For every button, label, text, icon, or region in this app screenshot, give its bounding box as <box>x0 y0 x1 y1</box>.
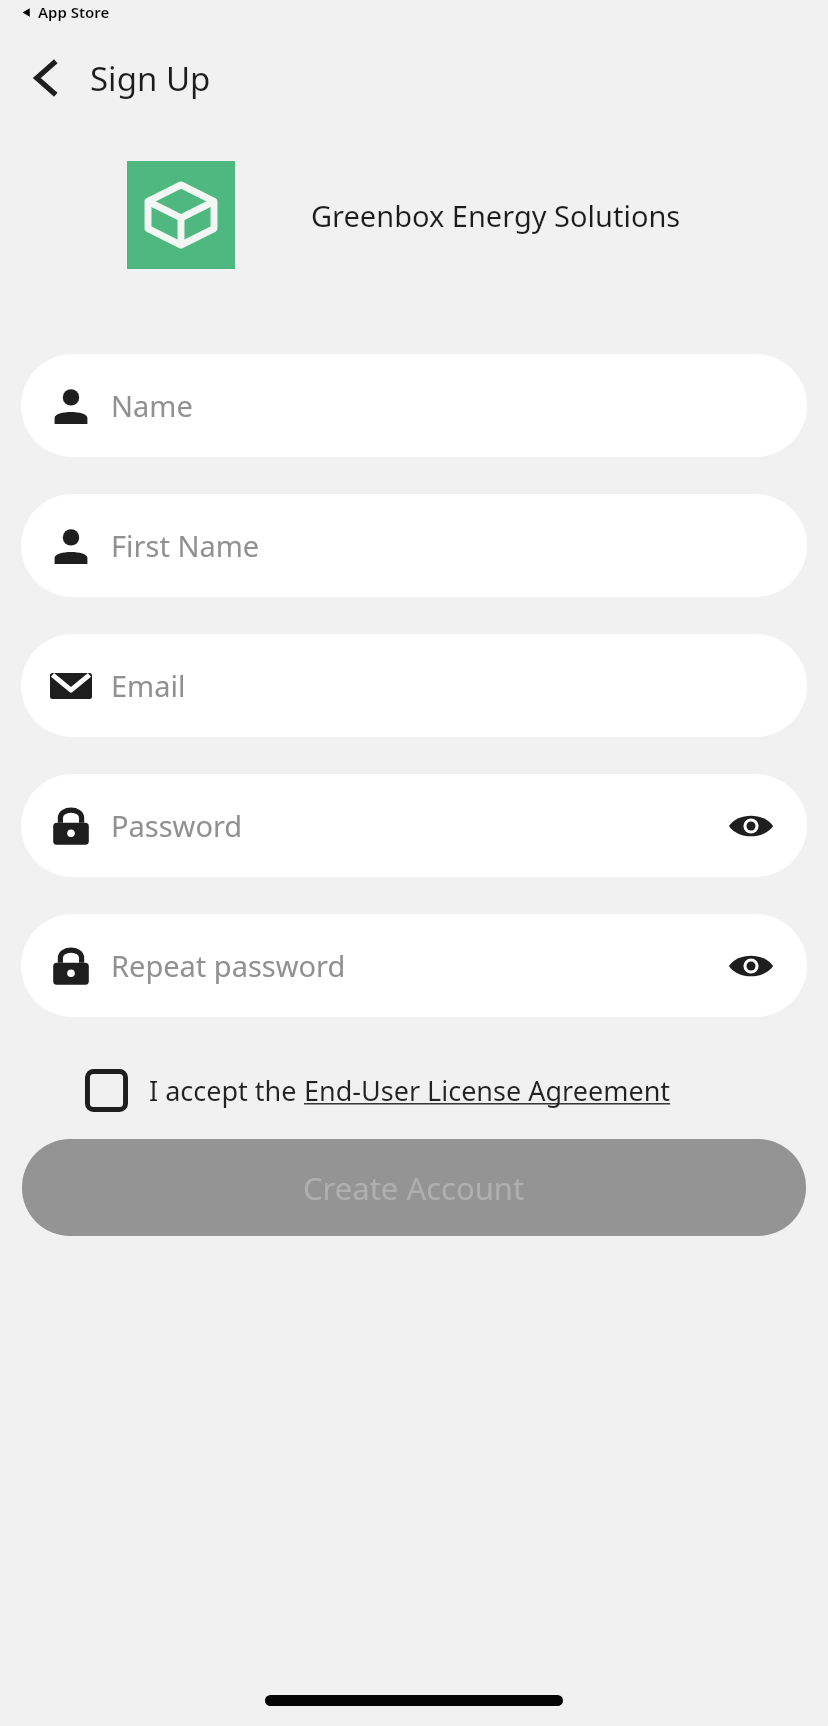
button[interactable]: First Name <box>21 494 807 597</box>
button[interactable]: Show password <box>715 930 787 1002</box>
staticText: Password <box>111 806 243 845</box>
button[interactable]: Repeat password <box>21 914 807 1017</box>
staticText: Name <box>111 386 193 425</box>
staticText: Sign Up <box>90 56 211 101</box>
staticText: Repeat password <box>111 946 346 985</box>
button[interactable]: Password <box>21 774 807 877</box>
staticText: I accept the <box>149 1072 304 1109</box>
button[interactable]: I accept the <box>85 1069 828 1112</box>
button[interactable]: Show password <box>715 790 787 862</box>
staticText: App Store <box>38 2 110 22</box>
staticText: End-User License Agreement <box>304 1072 671 1109</box>
staticText: First Name <box>111 526 260 565</box>
staticText: Greenbox Energy Solutions <box>311 196 681 235</box>
staticText: Create Account <box>303 1167 525 1209</box>
button[interactable]: Create Account <box>22 1139 806 1236</box>
button[interactable]: Back <box>18 49 76 107</box>
staticText: Email <box>111 666 186 705</box>
button[interactable]: Email <box>21 634 807 737</box>
button[interactable]: Name <box>21 354 807 457</box>
